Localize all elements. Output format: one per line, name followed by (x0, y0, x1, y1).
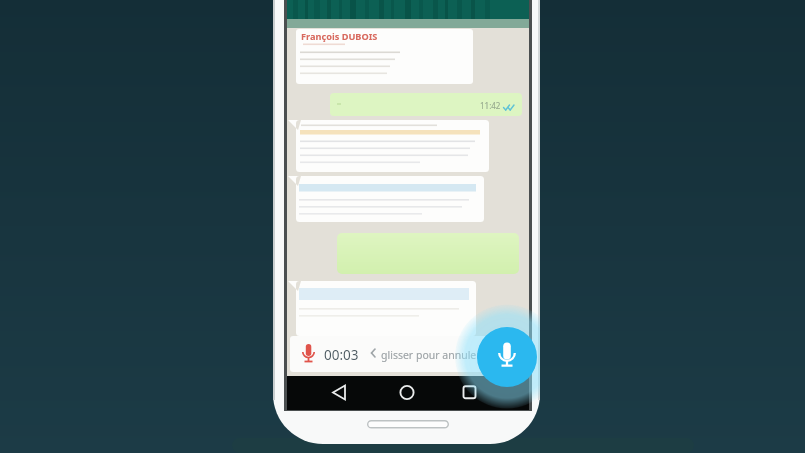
button[interactable] (387, 378, 427, 408)
button[interactable] (477, 327, 537, 387)
staticText: 00:03 (324, 346, 359, 364)
staticText: François DUBOIS (301, 30, 378, 43)
button[interactable] (317, 378, 357, 408)
button[interactable] (290, 336, 526, 372)
staticText: 11:42 (480, 100, 501, 111)
button[interactable] (450, 378, 490, 408)
staticText: glisser pour annuler (381, 348, 481, 362)
